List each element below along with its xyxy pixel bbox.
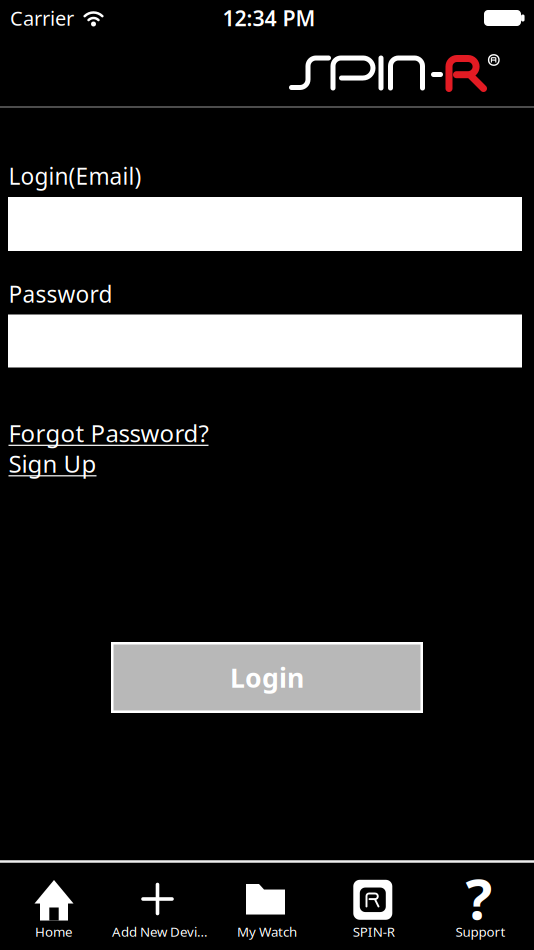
staticText: Add New Devi… <box>112 923 208 940</box>
staticText: Login(Email) <box>8 161 141 191</box>
staticText: ? <box>465 861 492 935</box>
staticText: Sign Up <box>8 448 96 479</box>
staticText: My Watch <box>237 923 297 940</box>
staticText: Login <box>230 660 304 695</box>
staticText: Support <box>456 923 506 940</box>
staticText: Forgot Password? <box>8 417 208 449</box>
staticText: SPIN-R <box>353 923 395 940</box>
staticText: Password <box>8 279 112 309</box>
staticText: 12:34 PM <box>222 4 315 32</box>
staticText: Carrier <box>10 5 74 31</box>
staticText: Home <box>35 923 73 940</box>
